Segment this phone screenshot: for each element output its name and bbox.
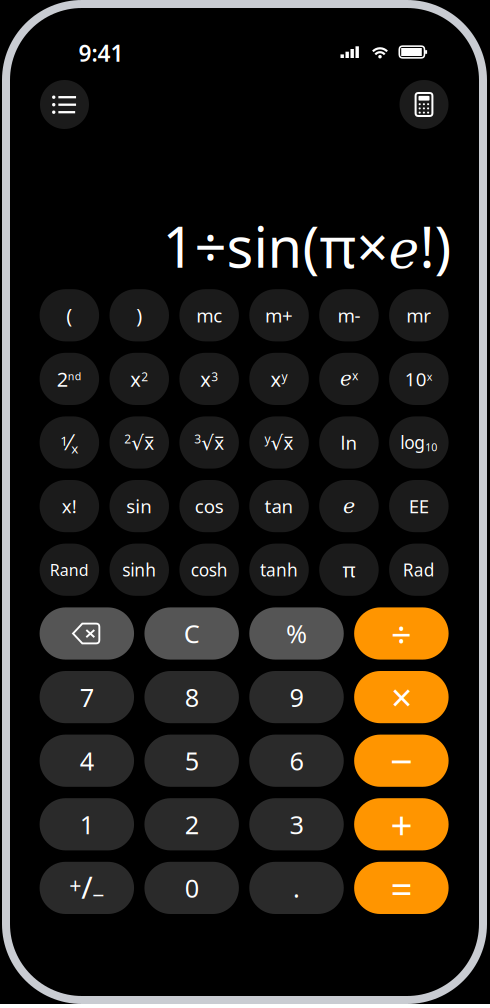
staticText: (: [66, 302, 72, 329]
button[interactable]: Rad: [389, 544, 449, 596]
button[interactable]: C: [144, 607, 239, 660]
staticText: tanh: [260, 558, 298, 581]
staticText: 2: [185, 807, 199, 841]
staticText: mr: [406, 303, 431, 328]
staticText: 3√x̅: [194, 430, 224, 455]
button[interactable]: mr: [389, 289, 449, 341]
staticText: m+: [265, 303, 293, 328]
staticText: tan: [265, 494, 294, 518]
button[interactable]: 2: [144, 798, 239, 850]
button[interactable]: 9: [249, 671, 344, 723]
staticText: =: [390, 862, 412, 913]
button[interactable]: %: [249, 607, 344, 660]
staticText: x3: [200, 366, 218, 392]
staticText: xy: [271, 366, 288, 392]
staticText: +: [390, 799, 412, 850]
button[interactable]: −: [354, 735, 449, 787]
staticText: y√x̅: [265, 430, 294, 455]
button[interactable]: xy: [249, 353, 309, 405]
button[interactable]: History: [40, 80, 89, 129]
button[interactable]: ): [109, 289, 169, 341]
button[interactable]: 5: [144, 735, 239, 787]
button[interactable]: ×: [354, 671, 449, 723]
staticText: mc: [196, 303, 222, 328]
button[interactable]: 2nd: [40, 353, 99, 405]
button[interactable]: x3: [179, 353, 239, 405]
staticText: ln: [340, 430, 357, 455]
button[interactable]: m-: [319, 289, 379, 341]
button[interactable]: y√x̅: [249, 416, 309, 469]
button[interactable]: π: [319, 544, 379, 596]
staticText: %: [286, 617, 307, 650]
staticText: C: [184, 617, 200, 650]
staticText: 7: [80, 680, 94, 714]
button[interactable]: tan: [249, 480, 309, 532]
staticText: ex: [340, 368, 358, 390]
staticText: 0: [185, 871, 199, 905]
button[interactable]: Delete: [40, 607, 134, 660]
staticText: Rad: [403, 558, 435, 581]
button[interactable]: 1: [40, 798, 134, 850]
button[interactable]: 0: [144, 862, 239, 914]
button[interactable]: x!: [40, 480, 99, 532]
button[interactable]: sin: [109, 480, 169, 532]
staticText: −: [390, 734, 413, 787]
staticText: e: [343, 494, 355, 518]
button[interactable]: cosh: [179, 544, 239, 596]
staticText: 8: [185, 680, 199, 714]
button[interactable]: 7: [40, 671, 134, 723]
staticText: 3: [289, 807, 303, 841]
button[interactable]: ÷: [354, 607, 449, 660]
button[interactable]: +/−: [40, 862, 134, 914]
staticText: ): [136, 302, 142, 329]
staticText: ÷: [391, 610, 412, 657]
button[interactable]: EE: [389, 480, 449, 532]
staticText: π: [342, 556, 355, 583]
button[interactable]: 4: [40, 735, 134, 787]
staticText: cos: [195, 494, 224, 518]
button[interactable]: =: [354, 862, 449, 914]
button[interactable]: 8: [144, 671, 239, 723]
staticText: sin: [126, 494, 152, 518]
button[interactable]: 2√x̅: [109, 416, 169, 469]
staticText: 9: [289, 680, 303, 714]
button[interactable]: Calculator mode: [399, 80, 448, 129]
staticText: .: [293, 871, 300, 905]
staticText: Rand: [50, 559, 89, 580]
staticText: +/−: [69, 867, 104, 909]
staticText: m-: [337, 303, 360, 328]
button[interactable]: cos: [179, 480, 239, 532]
staticText: sinh: [122, 558, 156, 581]
button[interactable]: x2: [109, 353, 169, 405]
staticText: x2: [130, 366, 148, 392]
button[interactable]: m+: [249, 289, 309, 341]
button[interactable]: ex: [319, 353, 379, 405]
button[interactable]: 10x: [389, 353, 449, 405]
staticText: ×: [391, 672, 412, 722]
button[interactable]: 1⁄x: [40, 416, 99, 469]
staticText: 2√x̅: [124, 430, 154, 455]
button[interactable]: ln: [319, 416, 379, 469]
staticText: 4: [80, 744, 94, 777]
staticText: 1⁄x: [60, 428, 78, 457]
staticText: 5: [185, 744, 199, 777]
button[interactable]: e: [319, 480, 379, 532]
staticText: 2nd: [57, 366, 82, 392]
button[interactable]: +: [354, 798, 449, 850]
button[interactable]: 6: [249, 735, 344, 787]
button[interactable]: mc: [179, 289, 239, 341]
staticText: 6: [289, 744, 303, 777]
button[interactable]: Rand: [40, 544, 99, 596]
staticText: 1÷sin(π×e!): [163, 209, 452, 283]
staticText: x!: [62, 494, 77, 518]
staticText: 1: [80, 807, 94, 841]
button[interactable]: 3√x̅: [179, 416, 239, 469]
button[interactable]: (: [40, 289, 99, 341]
button[interactable]: tanh: [249, 544, 309, 596]
staticText: log10: [400, 431, 437, 454]
staticText: 10x: [405, 366, 433, 391]
button[interactable]: .: [249, 862, 344, 914]
button[interactable]: sinh: [109, 544, 169, 596]
button[interactable]: 3: [249, 798, 344, 850]
button[interactable]: log10: [389, 416, 449, 469]
